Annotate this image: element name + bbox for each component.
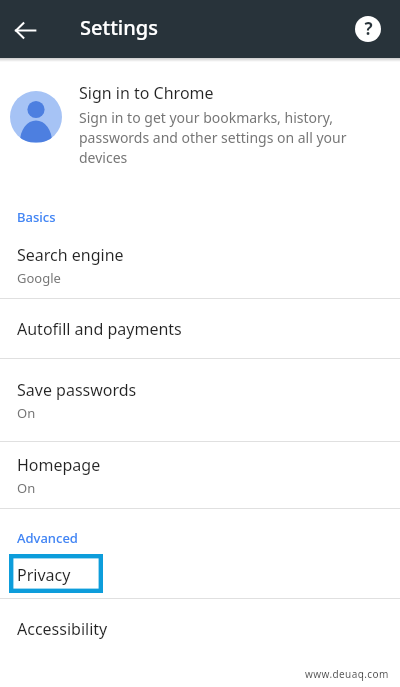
staticText: Sign in to Chrome [79, 82, 214, 104]
staticText: Accessibility [17, 618, 108, 640]
staticText: Basics [17, 208, 56, 226]
staticText: Autofill and payments [17, 318, 182, 340]
staticText: Search engine [17, 244, 124, 266]
staticText: Advanced [17, 529, 78, 547]
staticText: Privacy [17, 564, 71, 586]
staticText: www.deuaq.com [305, 667, 389, 681]
button[interactable]: Privacy [0, 553, 400, 598]
button[interactable]: Homepage [0, 442, 400, 508]
button[interactable]: Sign in to Chrome [0, 62, 400, 196]
staticText: Settings [80, 14, 158, 41]
staticText: On [17, 404, 36, 422]
button[interactable]: Save passwords [0, 359, 400, 441]
staticText: Google [17, 269, 61, 287]
button[interactable]: Back [8, 13, 42, 47]
staticText: Sign in to get your bookmarks, history, … [79, 108, 379, 167]
staticText: Save passwords [17, 379, 137, 401]
button[interactable]: Search engine [0, 232, 400, 298]
button[interactable]: Accessibility [0, 599, 400, 658]
button[interactable]: Help [352, 13, 384, 45]
staticText: Homepage [17, 454, 101, 476]
staticText: ? [364, 17, 373, 40]
staticText: On [17, 479, 36, 497]
button[interactable]: Autofill and payments [0, 299, 400, 358]
